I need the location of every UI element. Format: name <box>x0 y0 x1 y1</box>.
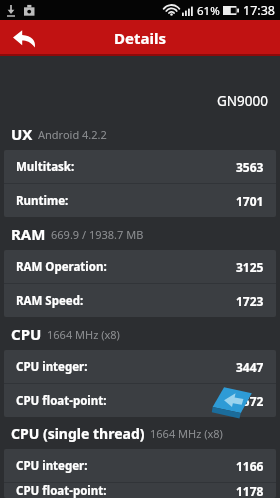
staticText: 1723 <box>236 293 264 309</box>
staticText: 1166 <box>236 458 264 474</box>
staticText: RAM <box>11 224 46 244</box>
staticText: CPU <box>11 324 42 344</box>
staticText: 1664 MHz (x8) <box>47 327 120 342</box>
staticText: Android 4.2.2 <box>38 127 107 142</box>
staticText: 3125 <box>236 259 264 275</box>
staticText: RAM Operation: <box>16 259 107 275</box>
button[interactable]: Back <box>0 20 48 56</box>
staticText: CPU integer: <box>16 359 88 375</box>
button[interactable]: CPU integer: <box>4 350 276 383</box>
staticText: 17:38 <box>243 2 275 19</box>
staticText: Details <box>114 28 166 48</box>
button[interactable]: Runtime: <box>4 184 276 217</box>
staticText: 3572 <box>236 393 264 409</box>
staticText: CPU float-point: <box>16 483 107 498</box>
button[interactable]: RAM Operation: <box>4 250 276 283</box>
staticText: RAM Speed: <box>16 293 84 309</box>
staticText: CPU float-point: <box>16 393 107 409</box>
staticText: GN9000 <box>217 92 268 110</box>
staticText: 1701 <box>236 193 264 209</box>
staticText: 1178 <box>236 483 264 498</box>
staticText: 3563 <box>236 159 264 175</box>
staticText: 61% <box>197 3 220 19</box>
staticText: Multitask: <box>16 159 75 175</box>
button[interactable]: Multitask: <box>4 150 276 183</box>
button[interactable]: CPU float-point: <box>4 384 276 417</box>
staticText: 3447 <box>236 359 264 375</box>
button[interactable]: CPU float-point: <box>4 483 276 498</box>
staticText: UX <box>11 124 33 144</box>
button[interactable]: RAM Speed: <box>4 284 276 317</box>
staticText: CPU (single thread) <box>11 424 145 443</box>
button[interactable]: CPU integer: <box>4 449 276 482</box>
staticText: 1664 MHz (x8) <box>150 426 223 441</box>
staticText: Runtime: <box>16 193 69 209</box>
staticText: CPU integer: <box>16 458 88 474</box>
staticText: 669.9 / 1938.7 MB <box>51 227 144 242</box>
